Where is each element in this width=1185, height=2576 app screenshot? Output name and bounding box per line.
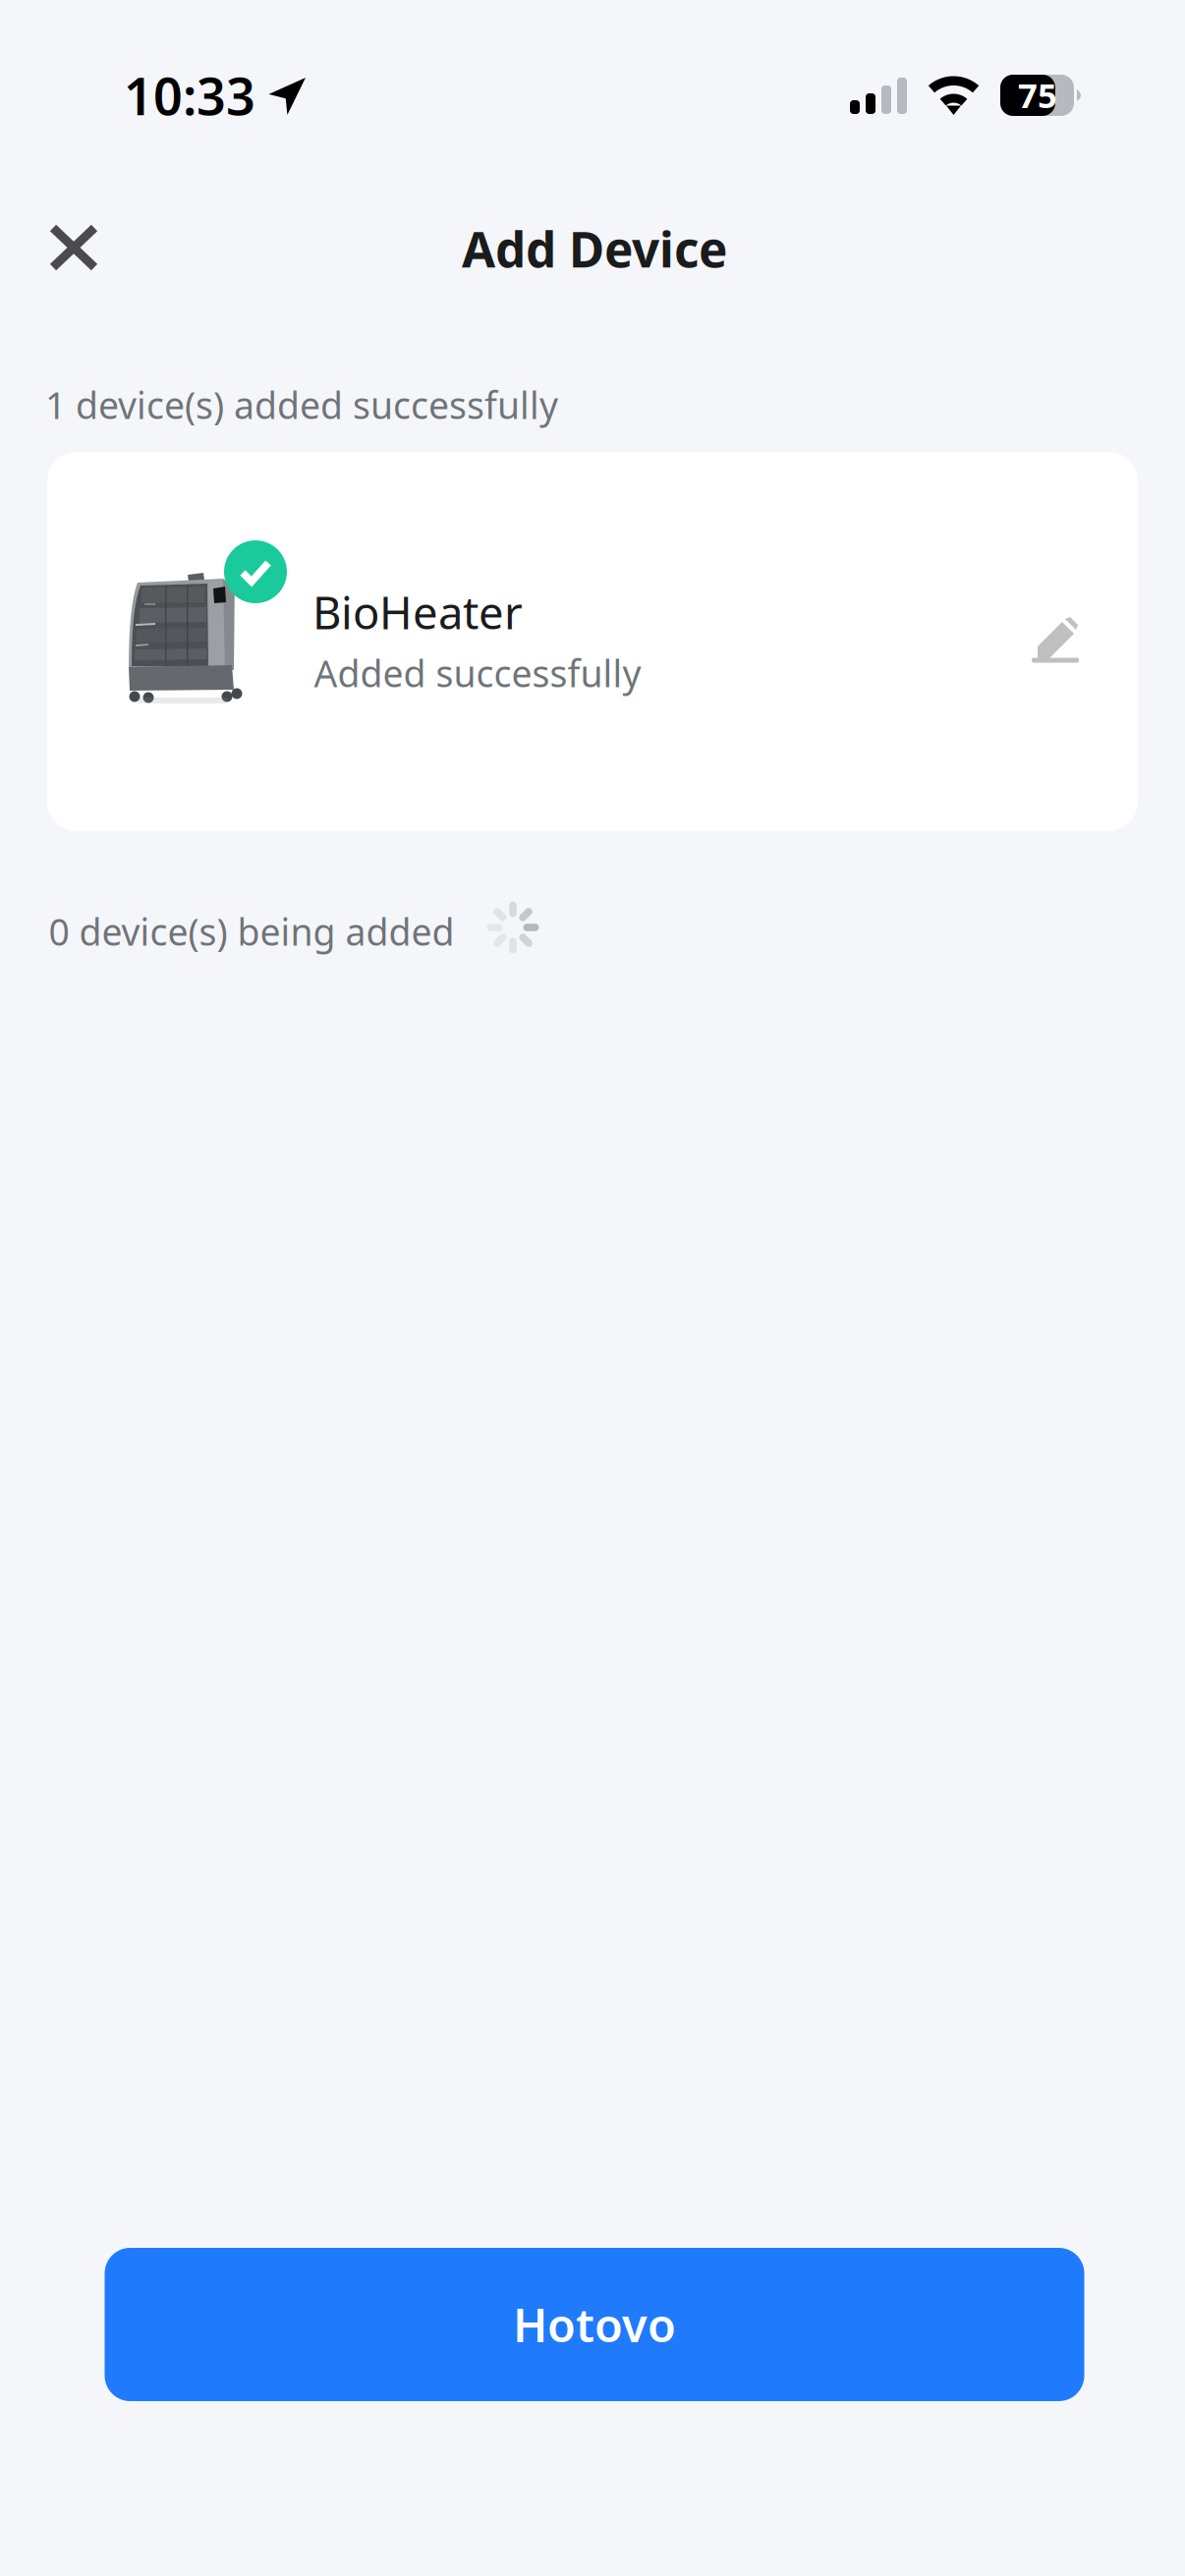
staticText: Added successfully	[314, 649, 641, 697]
button[interactable]: Rename device	[1006, 590, 1104, 689]
staticText: Hotovo	[513, 2294, 676, 2355]
staticText: 1 device(s) added successfully	[45, 380, 558, 429]
staticText: 0 device(s) being added	[49, 907, 454, 956]
staticText: 75	[1018, 72, 1057, 117]
button[interactable]: Close	[15, 189, 133, 307]
staticText: Add Device	[462, 216, 727, 281]
staticText: BioHeater	[312, 582, 523, 642]
staticText: 10:33	[124, 61, 255, 129]
button[interactable]: Hotovo	[105, 2248, 1084, 2401]
